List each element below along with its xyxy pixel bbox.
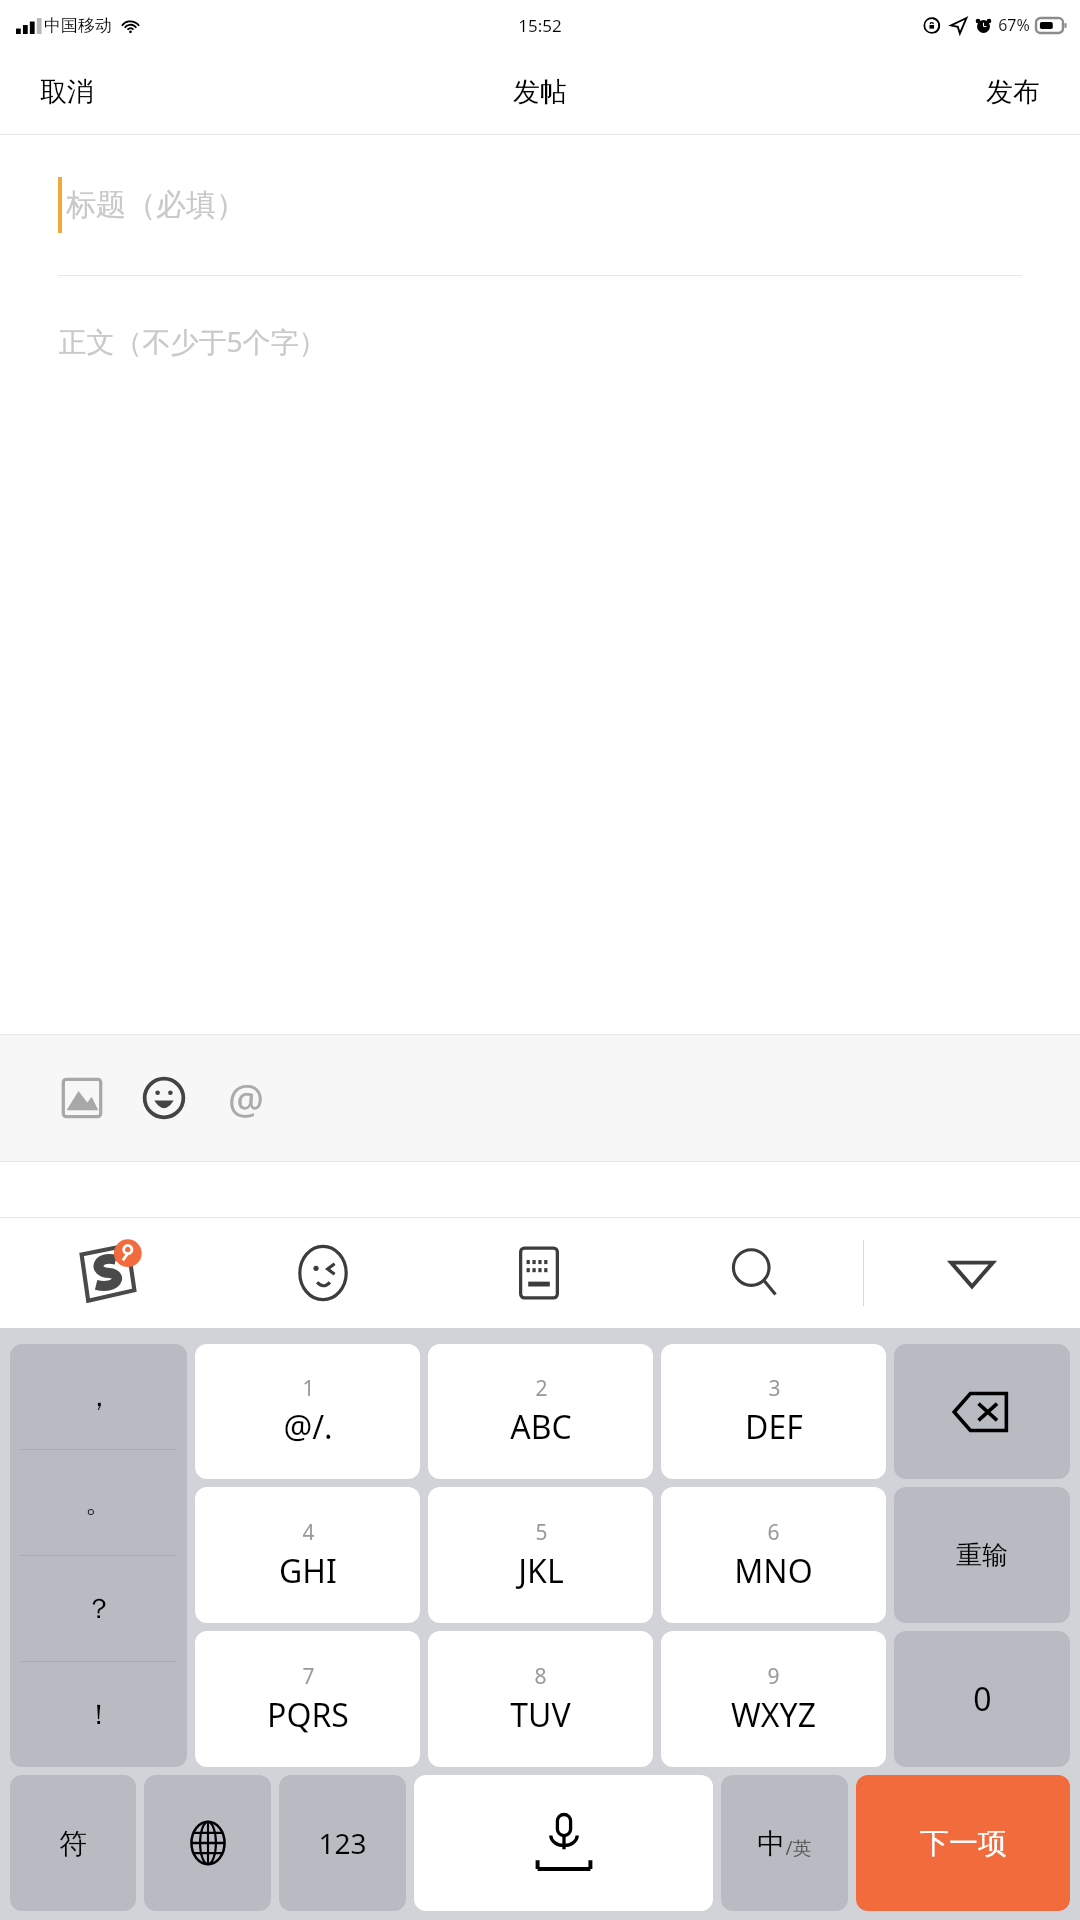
- staticText: WXYZ: [731, 1693, 816, 1737]
- button[interactable]: 2: [428, 1344, 653, 1479]
- staticText: 0: [973, 1677, 992, 1721]
- button[interactable]: 标题（必填）: [0, 135, 1080, 275]
- button[interactable]: 4: [195, 1487, 420, 1623]
- staticText: GHI: [279, 1549, 337, 1593]
- staticText: 正文（不少于5个字）: [58, 322, 327, 360]
- staticText: 123: [318, 1824, 367, 1862]
- staticText: ？: [85, 1591, 113, 1626]
- button[interactable]: 中: [721, 1775, 848, 1911]
- staticText: 2: [535, 1374, 548, 1403]
- staticText: 中国移动: [44, 15, 112, 36]
- staticText: JKL: [518, 1549, 564, 1593]
- button[interactable]: 正文（不少于5个字）: [0, 276, 1080, 406]
- button[interactable]: Switch language: [144, 1775, 271, 1911]
- button[interactable]: 3: [661, 1344, 886, 1479]
- button[interactable]: Sogou input: [0, 1218, 215, 1328]
- button[interactable]: 发布: [946, 59, 1080, 125]
- button[interactable]: 6: [661, 1487, 886, 1623]
- staticText: 取消: [40, 75, 94, 109]
- staticText: 重输: [956, 1539, 1008, 1572]
- button[interactable]: Keyboard layout: [431, 1218, 647, 1328]
- staticText: 发帖: [513, 75, 567, 109]
- staticText: 发布: [986, 75, 1040, 109]
- button[interactable]: ，: [10, 1344, 187, 1767]
- button[interactable]: 0: [894, 1631, 1070, 1767]
- button[interactable]: Hide keyboard: [864, 1218, 1080, 1328]
- staticText: 4: [302, 1518, 315, 1547]
- staticText: PQRS: [267, 1693, 349, 1737]
- staticText: 7: [302, 1662, 315, 1691]
- staticText: /英: [785, 1835, 812, 1861]
- staticText: ABC: [510, 1405, 572, 1449]
- staticText: 符: [59, 1826, 87, 1861]
- staticText: ！: [85, 1697, 113, 1732]
- button[interactable]: 9: [661, 1631, 886, 1767]
- staticText: 1: [302, 1374, 315, 1403]
- staticText: 8: [534, 1662, 547, 1691]
- staticText: @/.: [283, 1405, 333, 1449]
- button[interactable]: 下一项: [856, 1775, 1070, 1911]
- button[interactable]: 发帖: [489, 59, 591, 125]
- staticText: 6: [767, 1518, 780, 1547]
- button[interactable]: 1: [195, 1344, 420, 1479]
- button[interactable]: 取消: [0, 59, 134, 125]
- staticText: 标题（必填）: [66, 186, 246, 224]
- button[interactable]: 符: [10, 1775, 136, 1911]
- button[interactable]: 8: [428, 1631, 653, 1767]
- staticText: 下一项: [920, 1825, 1007, 1862]
- staticText: 。: [85, 1485, 113, 1520]
- staticText: TUV: [510, 1693, 571, 1737]
- staticText: 15:52: [518, 14, 562, 37]
- button[interactable]: Add image: [46, 1062, 118, 1134]
- staticText: MNO: [734, 1549, 813, 1593]
- button[interactable]: 123: [279, 1775, 406, 1911]
- button[interactable]: [894, 1344, 1070, 1479]
- button[interactable]: Mention: [210, 1062, 282, 1134]
- staticText: 3: [768, 1374, 781, 1403]
- button[interactable]: Space / voice input: [414, 1775, 713, 1911]
- staticText: 9: [767, 1662, 780, 1691]
- staticText: 67%: [998, 14, 1030, 36]
- staticText: 中: [757, 1826, 785, 1861]
- staticText: 5: [535, 1518, 548, 1547]
- staticText: @: [228, 1071, 264, 1125]
- button[interactable]: 重输: [894, 1487, 1070, 1623]
- button[interactable]: Emoji: [128, 1062, 200, 1134]
- button[interactable]: Emoticons: [215, 1218, 431, 1328]
- staticText: DEF: [745, 1405, 803, 1449]
- button[interactable]: Search: [647, 1218, 863, 1328]
- staticText: ，: [85, 1379, 113, 1414]
- button[interactable]: 7: [195, 1631, 420, 1767]
- button[interactable]: 5: [428, 1487, 653, 1623]
